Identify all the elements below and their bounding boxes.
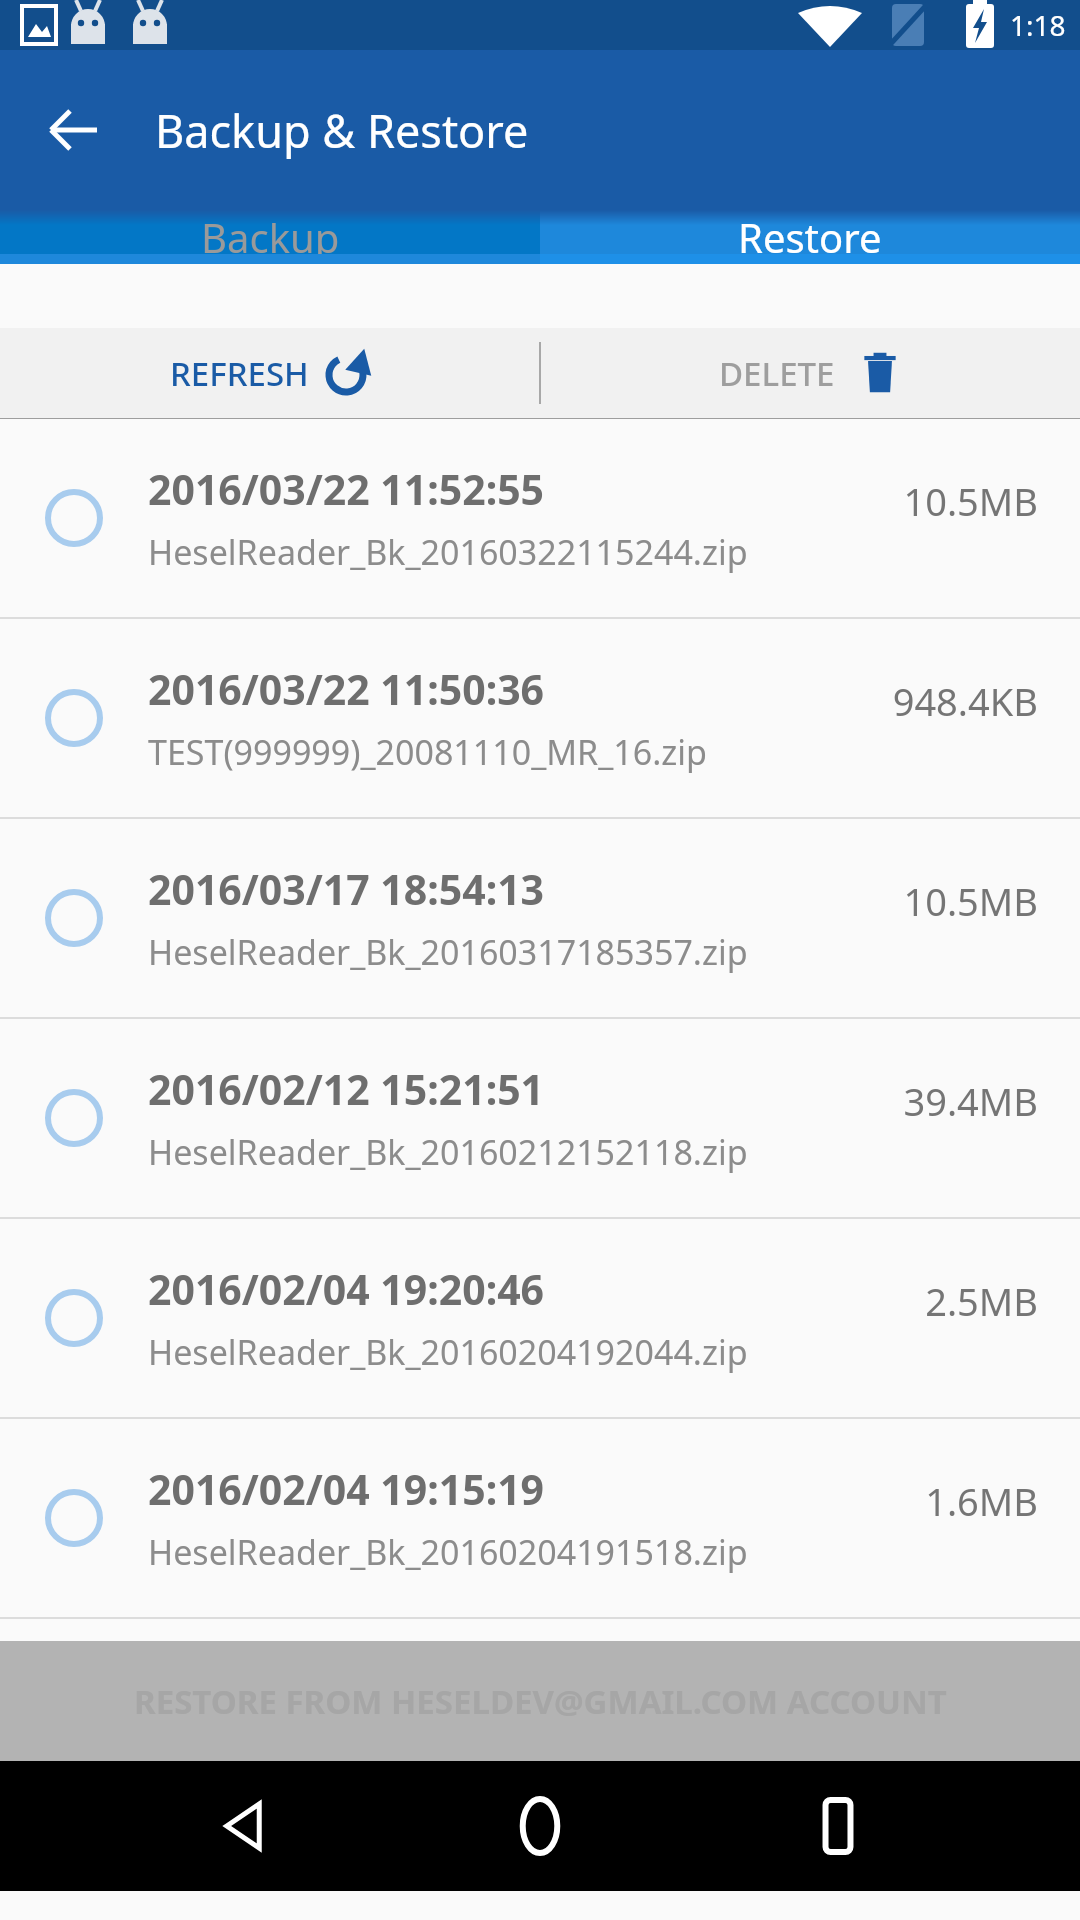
staticText: 1.6MB (925, 1475, 1038, 1527)
button[interactable]: 2016/03/17 18:54:13 (0, 819, 1080, 1017)
staticText: HeselReader_Bk_20160204192044.zip (148, 1329, 748, 1375)
button[interactable]: Home (485, 1771, 595, 1881)
staticText: HeselReader_Bk_20160212152118.zip (148, 1129, 748, 1175)
staticText: 39.4MB (903, 1075, 1038, 1127)
button[interactable]: RESTORE FROM HESELDEV@GMAIL.COM ACCOUNT (0, 1641, 1080, 1761)
staticText: HeselReader_Bk_20160204191518.zip (148, 1529, 748, 1575)
staticText: 2.5MB (925, 1275, 1038, 1327)
button[interactable]: REFRESH (0, 328, 539, 418)
staticText: Backup & Restore (155, 100, 529, 161)
staticText: 2016/03/17 18:54:13 (148, 861, 545, 917)
button[interactable]: 2016/02/04 19:20:46 (0, 1219, 1080, 1417)
staticText: 2016/02/04 19:15:19 (148, 1461, 545, 1517)
staticText: RESTORE FROM HESELDEV@GMAIL.COM ACCOUNT (134, 1679, 947, 1724)
button[interactable]: Back (26, 82, 122, 178)
button[interactable]: Backup (0, 210, 540, 264)
button[interactable]: Recent apps (783, 1771, 893, 1881)
staticText: 1:18 (1010, 6, 1066, 44)
staticText: Backup (201, 210, 340, 264)
button[interactable]: Restore (540, 210, 1080, 264)
staticText: HeselReader_Bk_20160322115244.zip (148, 529, 748, 575)
button[interactable]: 2016/02/04 19:15:19 (0, 1419, 1080, 1617)
staticText: TEST(999999)_20081110_MR_16.zip (148, 729, 707, 775)
staticText: 948.4KB (892, 675, 1038, 727)
staticText: 2016/02/04 19:20:46 (148, 1261, 545, 1317)
staticText: 2016/02/12 15:21:51 (148, 1061, 545, 1117)
staticText: HeselReader_Bk_20160317185357.zip (148, 929, 748, 975)
button[interactable]: 2016/02/12 15:21:51 (0, 1019, 1080, 1217)
staticText: 2016/03/22 11:52:55 (148, 461, 545, 517)
staticText: 2016/03/22 11:50:36 (148, 661, 545, 717)
button[interactable]: 2016/03/22 11:52:55 (0, 419, 1080, 617)
button[interactable]: DELETE (541, 328, 1080, 418)
staticText: DELETE (719, 351, 835, 396)
staticText: REFRESH (170, 351, 309, 396)
staticText: Restore (738, 210, 882, 264)
button[interactable]: 2016/03/22 11:50:36 (0, 619, 1080, 817)
staticText: 10.5MB (903, 475, 1038, 527)
staticText: 10.5MB (903, 875, 1038, 927)
button[interactable]: Back (188, 1771, 298, 1881)
